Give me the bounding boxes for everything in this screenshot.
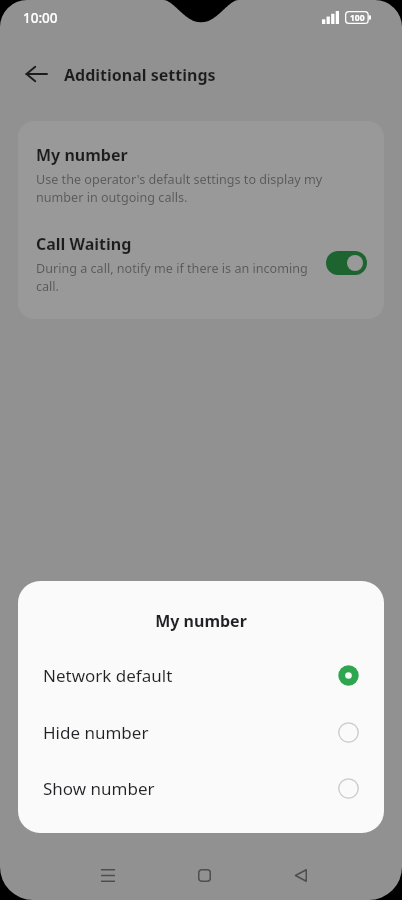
button[interactable]: Back (276, 851, 324, 899)
staticText: During a call, notify me if there is an … (36, 260, 328, 295)
button[interactable]: My number (18, 121, 384, 213)
staticText: 10:00 (23, 9, 58, 27)
staticText: Show number (43, 777, 338, 800)
button[interactable]: Network default (18, 647, 384, 703)
button[interactable]: Back (12, 50, 60, 98)
button[interactable]: Call Waiting (18, 213, 384, 319)
button[interactable]: Recent apps (84, 851, 132, 899)
button[interactable]: Hide number (18, 704, 384, 760)
staticText: Hide number (43, 721, 338, 744)
staticText: Network default (43, 664, 338, 687)
staticText: Additional settings (64, 64, 216, 86)
staticText: My number (18, 610, 384, 632)
staticText: 100 (350, 12, 365, 24)
staticText: Call Waiting (36, 233, 132, 255)
button[interactable]: Call Waiting toggle (326, 251, 367, 275)
staticText: My number (36, 144, 128, 166)
button[interactable]: Show number (18, 760, 384, 816)
staticText: Use the operator's default settings to d… (36, 171, 328, 206)
button[interactable]: Home (180, 851, 228, 899)
